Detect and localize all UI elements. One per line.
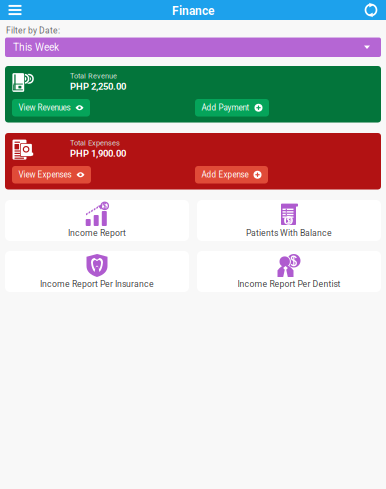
staticText: Total Revenue [70, 72, 117, 80]
staticText: Filter by Date: [6, 25, 60, 35]
button[interactable]: Income Report Per Dentist [197, 251, 381, 292]
button[interactable]: View Revenues [12, 99, 90, 116]
staticText: Total Expenses [70, 139, 120, 147]
button[interactable]: Patients With Balance [197, 200, 381, 241]
staticText: PHP 1,900.00 [70, 148, 126, 159]
staticText: Patients With Balance [246, 228, 332, 238]
staticText: Finance [172, 4, 214, 18]
staticText: Income Report Per Insurance [40, 279, 154, 289]
staticText: This Week [13, 41, 59, 53]
button[interactable]: Income Report Per Insurance [5, 251, 189, 292]
staticText: View Revenues [18, 103, 70, 112]
staticText: Income Report Per Dentist [237, 279, 340, 289]
button[interactable]: Income Report [5, 200, 189, 241]
staticText: PHP 2,250.00 [70, 81, 126, 92]
staticText: Add Payment [201, 103, 249, 112]
staticText: Income Report [68, 228, 126, 238]
staticText: View Expenses [18, 170, 71, 179]
button[interactable]: This Week [5, 37, 381, 57]
button[interactable]: Refresh [356, 0, 386, 20]
button[interactable]: Menu [0, 0, 30, 20]
button[interactable]: Add Expense [195, 166, 268, 183]
staticText: Add Expense [201, 170, 248, 179]
button[interactable]: Add Payment [195, 99, 269, 116]
button[interactable]: View Expenses [12, 166, 91, 183]
